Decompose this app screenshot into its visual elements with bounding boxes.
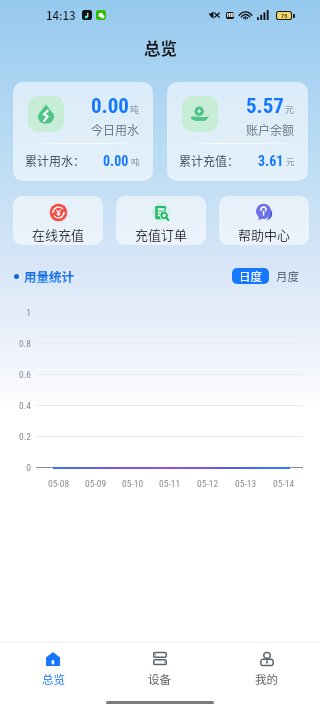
staticText: 在线充值 bbox=[32, 225, 85, 244]
staticText: HD bbox=[227, 12, 234, 19]
staticText: 1 bbox=[0, 307, 31, 318]
staticText: 3.61 bbox=[258, 153, 284, 169]
staticText: 0.6 bbox=[0, 369, 31, 380]
staticText: 0.00 bbox=[91, 94, 129, 119]
button[interactable]: 在线充值 bbox=[13, 196, 103, 245]
staticText: 元 bbox=[286, 155, 295, 167]
staticText: 0.8 bbox=[0, 338, 31, 349]
staticText: 总览 bbox=[42, 671, 65, 688]
staticText: 05-09 bbox=[85, 478, 107, 489]
button[interactable]: 月度 bbox=[276, 268, 299, 284]
staticText: 吨 bbox=[131, 155, 140, 167]
staticText: 75 bbox=[281, 12, 288, 19]
staticText: 帮助中心 bbox=[238, 225, 291, 244]
staticText: 0 bbox=[0, 462, 31, 473]
staticText: 05-08 bbox=[48, 478, 70, 489]
staticText: 总览 bbox=[144, 36, 177, 60]
button[interactable]: 0.00 bbox=[13, 82, 153, 181]
staticText: 0.4 bbox=[0, 400, 31, 411]
staticText: 5.57 bbox=[246, 94, 284, 119]
button[interactable]: 帮助中心 bbox=[219, 196, 309, 245]
staticText: 累计充值： bbox=[179, 152, 240, 169]
staticText: 0.2 bbox=[0, 431, 31, 442]
staticText: 我的 bbox=[255, 671, 278, 688]
staticText: 05-10 bbox=[122, 478, 144, 489]
staticText: 05-12 bbox=[197, 478, 219, 489]
staticText: 累计用水： bbox=[25, 152, 86, 169]
button[interactable]: 我的 bbox=[213, 643, 320, 693]
staticText: 05-13 bbox=[235, 478, 257, 489]
staticText: 月度 bbox=[276, 268, 299, 284]
staticText: 0.00 bbox=[103, 153, 129, 169]
staticText: 充值订单 bbox=[135, 225, 188, 244]
staticText: 今日用水 bbox=[91, 121, 140, 138]
button[interactable]: 日度 bbox=[232, 268, 269, 284]
staticText: 05-14 bbox=[273, 478, 295, 489]
staticText: 设备 bbox=[148, 671, 171, 688]
staticText: 14:13 bbox=[46, 7, 76, 24]
staticText: 元 bbox=[285, 103, 295, 116]
staticText: 账户余额 bbox=[246, 121, 295, 138]
button[interactable]: 设备 bbox=[106, 643, 213, 693]
staticText: 用量统计 bbox=[24, 267, 75, 285]
button[interactable]: 总览 bbox=[0, 643, 106, 693]
button[interactable]: 5.57 bbox=[167, 82, 308, 181]
button[interactable]: 充值订单 bbox=[116, 196, 206, 245]
staticText: 日度 bbox=[239, 268, 262, 284]
staticText: 05-11 bbox=[159, 478, 181, 489]
staticText: 吨 bbox=[130, 103, 140, 116]
